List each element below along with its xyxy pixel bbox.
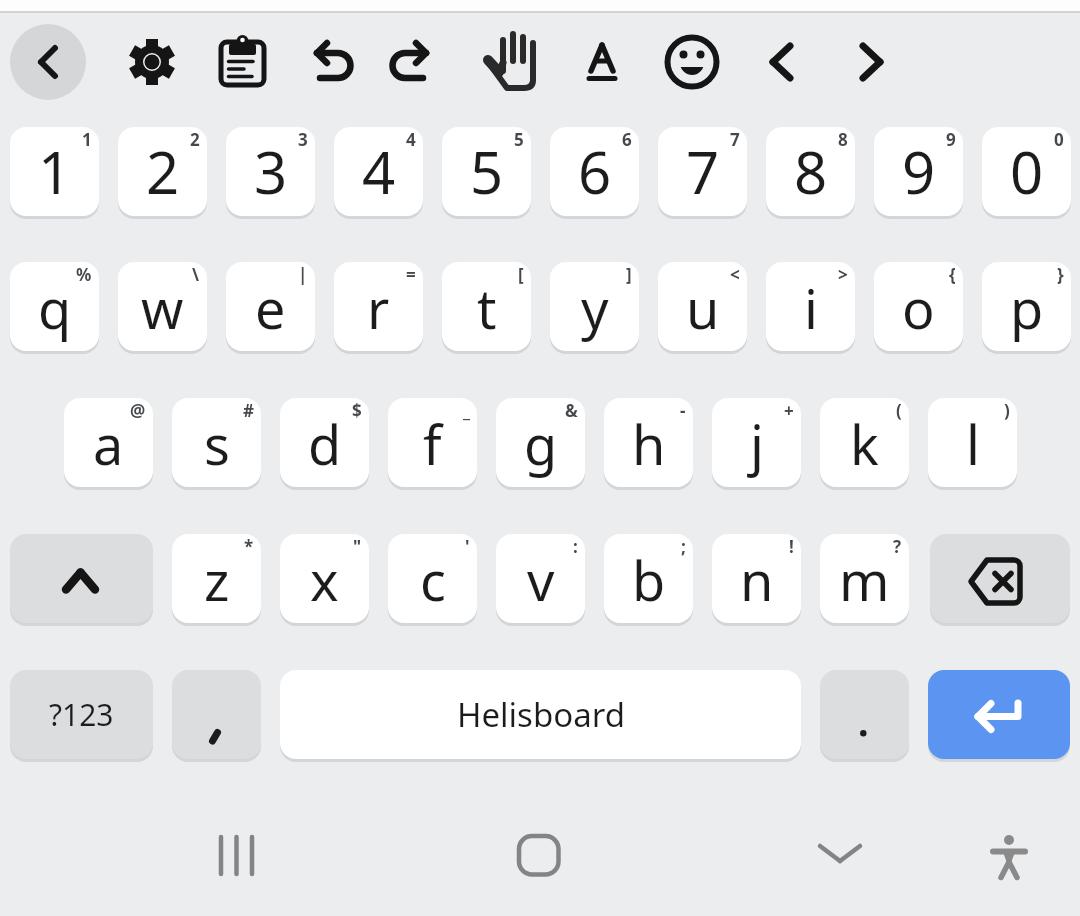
staticText: % [76,263,92,286]
button[interactable] [291,18,375,106]
button[interactable] [959,805,1059,905]
button[interactable]: u [658,262,747,351]
staticText: 9 [902,132,936,211]
staticText: 6 [578,132,612,211]
button[interactable] [650,18,734,106]
button[interactable]: z [172,534,261,623]
button[interactable]: 3 [226,127,315,216]
button[interactable]: 2 [118,127,207,216]
staticText: j [750,407,764,481]
button[interactable]: h [604,398,693,487]
button[interactable]: q [10,262,99,351]
staticText: f [423,407,442,481]
button[interactable]: d [280,398,369,487]
button[interactable]: l [928,398,1017,487]
staticText: ; [681,535,686,558]
button[interactable]: j [712,398,801,487]
staticText: : [573,535,578,558]
button[interactable]: i [766,262,855,351]
button[interactable]: 7 [658,127,747,216]
staticText: { [949,263,956,286]
button[interactable]: m [820,534,909,623]
button[interactable]: 0 [982,127,1071,216]
button[interactable]: Helisboard [280,670,801,759]
staticText: s [204,407,230,481]
button[interactable]: 4 [334,127,423,216]
staticText: e [255,271,286,345]
button[interactable] [379,18,463,106]
staticText: 7 [730,128,740,151]
staticText: 2 [146,132,180,211]
staticText: > [838,263,848,286]
staticText: [ [518,263,524,286]
staticText: ?123 [49,694,114,735]
staticText: " [353,535,362,558]
button[interactable] [172,670,261,759]
button[interactable]: t [442,262,531,351]
button[interactable]: 6 [550,127,639,216]
button[interactable]: 1 [10,127,99,216]
button[interactable] [6,18,90,106]
staticText: 8 [794,132,828,211]
button[interactable]: 5 [442,127,531,216]
button[interactable]: s [172,398,261,487]
button[interactable]: 9 [874,127,963,216]
button[interactable]: ?123 [10,670,153,759]
button[interactable]: c [388,534,477,623]
staticText: 4 [406,128,416,151]
button[interactable]: 8 [766,127,855,216]
staticText: q [38,271,72,345]
button[interactable]: k [820,398,909,487]
staticText: ) [1004,399,1010,422]
staticText: b [632,543,666,617]
button[interactable] [489,805,589,905]
button[interactable] [820,670,909,759]
staticText: k [850,407,879,481]
staticText: l [966,407,980,481]
button[interactable] [469,18,553,106]
staticText: 8 [838,128,848,151]
staticText: t [477,271,497,345]
staticText: 1 [82,128,92,151]
button[interactable]: x [280,534,369,623]
button[interactable]: a [64,398,153,487]
staticText: 0 [1010,132,1044,211]
staticText: ( [896,399,902,422]
staticText: < [730,263,740,286]
button[interactable]: y [550,262,639,351]
staticText: i [804,271,818,345]
button[interactable] [930,534,1070,623]
button[interactable] [186,805,286,905]
button[interactable]: n [712,534,801,623]
button[interactable] [928,670,1070,759]
staticText: 5 [470,132,504,211]
staticText: ! [789,535,794,558]
button[interactable] [829,18,913,106]
staticText: $ [352,399,362,422]
staticText: 3 [254,132,288,211]
staticText: 4 [362,132,396,211]
button[interactable]: r [334,262,423,351]
button[interactable] [740,18,824,106]
staticText: u [686,271,720,345]
button[interactable] [790,805,890,905]
staticText: n [740,543,774,617]
button[interactable]: p [982,262,1071,351]
button[interactable] [200,18,284,106]
button[interactable]: b [604,534,693,623]
staticText: x [310,543,339,617]
staticText: - [680,399,686,422]
button[interactable] [560,18,644,106]
button[interactable]: e [226,262,315,351]
button[interactable]: g [496,398,585,487]
button[interactable]: f [388,398,477,487]
button[interactable]: w [118,262,207,351]
staticText: * [244,535,254,558]
button[interactable] [110,18,194,106]
button[interactable]: v [496,534,585,623]
staticText: 1 [38,132,72,211]
staticText: ' [465,535,470,558]
button[interactable]: o [874,262,963,351]
button[interactable] [10,534,153,623]
staticText: h [632,407,666,481]
